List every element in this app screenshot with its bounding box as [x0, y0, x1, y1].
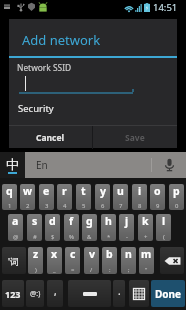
staticText: ( — [163, 233, 165, 241]
staticText: + — [144, 233, 148, 241]
staticText: q — [6, 184, 13, 198]
staticText: 0 — [175, 202, 179, 210]
staticText: - — [126, 233, 128, 241]
staticText: u — [117, 184, 124, 198]
button[interactable]: m — [139, 247, 154, 274]
staticText: x — [51, 247, 58, 261]
staticText: w — [23, 184, 32, 198]
staticText: @ — [13, 233, 19, 241]
button[interactable]: l — [156, 214, 171, 241]
staticText: e — [43, 184, 50, 198]
staticText: i — [138, 184, 142, 198]
button[interactable]: b — [102, 247, 117, 274]
button[interactable]: d — [45, 214, 60, 241]
staticText: Cancel — [36, 132, 65, 144]
staticText: @:) — [30, 289, 41, 299]
staticText: # — [33, 233, 37, 241]
staticText: r — [62, 184, 67, 198]
button[interactable]: Done — [151, 280, 185, 307]
button[interactable]: i — [132, 184, 147, 210]
button[interactable]: Backspace — [160, 247, 184, 274]
button[interactable]: En — [25, 152, 151, 178]
staticText: _ — [53, 266, 56, 274]
staticText: En — [36, 158, 48, 172]
staticText: 6 — [101, 202, 105, 210]
button[interactable]: j — [119, 214, 134, 241]
staticText: d — [49, 214, 56, 228]
staticText: . — [118, 284, 121, 298]
button[interactable]: e — [39, 184, 54, 210]
staticText: 2 — [26, 202, 30, 210]
button[interactable]: u — [113, 184, 128, 210]
staticText: : — [109, 266, 111, 274]
staticText: " — [145, 266, 148, 274]
button[interactable]: g — [82, 214, 97, 241]
button[interactable]: Period — [113, 280, 125, 307]
button[interactable]: y — [95, 184, 110, 210]
staticText: k — [142, 214, 149, 228]
button[interactable]: Cancel — [9, 126, 92, 149]
staticText: 3 — [45, 202, 49, 210]
staticText: h — [105, 214, 112, 228]
staticText: $ — [51, 233, 55, 241]
button[interactable]: r — [57, 184, 72, 210]
staticText: ) — [35, 266, 37, 274]
button[interactable]: v — [84, 247, 99, 274]
button[interactable]: z — [28, 247, 43, 274]
staticText: f — [69, 214, 74, 228]
staticText: = — [71, 266, 75, 274]
staticText: % — [69, 233, 74, 241]
staticText: t — [81, 184, 86, 198]
button[interactable]: p — [169, 184, 184, 210]
button[interactable]: Voice input — [152, 152, 186, 178]
button[interactable]: t — [76, 184, 91, 210]
button[interactable]: q — [2, 184, 17, 210]
button[interactable]: Space — [68, 280, 111, 307]
staticText: * — [107, 233, 111, 241]
staticText: Done — [155, 287, 182, 301]
staticText: & — [87, 233, 92, 241]
staticText: 1 — [8, 202, 12, 210]
staticText: / — [90, 266, 93, 274]
staticText: g — [86, 214, 93, 228]
button[interactable]: Symbols and numbers — [2, 280, 24, 307]
button[interactable]: Chinese word mode — [2, 247, 26, 274]
staticText: 中 — [6, 156, 19, 172]
staticText: c — [70, 247, 76, 261]
button[interactable]: w — [20, 184, 35, 210]
staticText: o — [154, 184, 161, 198]
staticText: v — [89, 247, 95, 261]
button[interactable]: a — [8, 214, 23, 241]
staticText: a — [12, 214, 19, 228]
staticText: s — [32, 214, 38, 228]
button[interactable]: h — [101, 214, 116, 241]
button[interactable]: f — [64, 214, 79, 241]
button[interactable]: 中 — [0, 152, 25, 178]
staticText: 7 — [119, 202, 123, 210]
button[interactable]: Comma — [47, 280, 63, 307]
staticText: 9 — [156, 202, 160, 210]
staticText: Save — [125, 132, 145, 144]
button[interactable]: Save — [93, 126, 177, 149]
staticText: 14:51 — [153, 1, 178, 14]
staticText: n — [125, 247, 132, 261]
staticText: l — [162, 214, 166, 228]
staticText: Add network — [22, 31, 101, 49]
button[interactable]: Keyboard layout — [129, 280, 149, 307]
staticText: 4 — [63, 202, 67, 210]
button[interactable]: o — [150, 184, 165, 210]
button[interactable]: x — [47, 247, 62, 274]
staticText: Network SSID — [17, 62, 72, 73]
staticText: 5 — [82, 202, 86, 210]
staticText: Security — [18, 102, 54, 115]
staticText: '词 — [8, 255, 20, 267]
staticText: z — [33, 247, 39, 261]
button[interactable]: Emoji — [26, 280, 44, 307]
staticText: ; — [128, 266, 130, 274]
staticText: 123 — [5, 288, 21, 300]
staticText: j — [125, 214, 129, 228]
button[interactable]: s — [27, 214, 42, 241]
button[interactable]: n — [121, 247, 136, 274]
button[interactable]: k — [138, 214, 153, 241]
button[interactable]: c — [65, 247, 80, 274]
